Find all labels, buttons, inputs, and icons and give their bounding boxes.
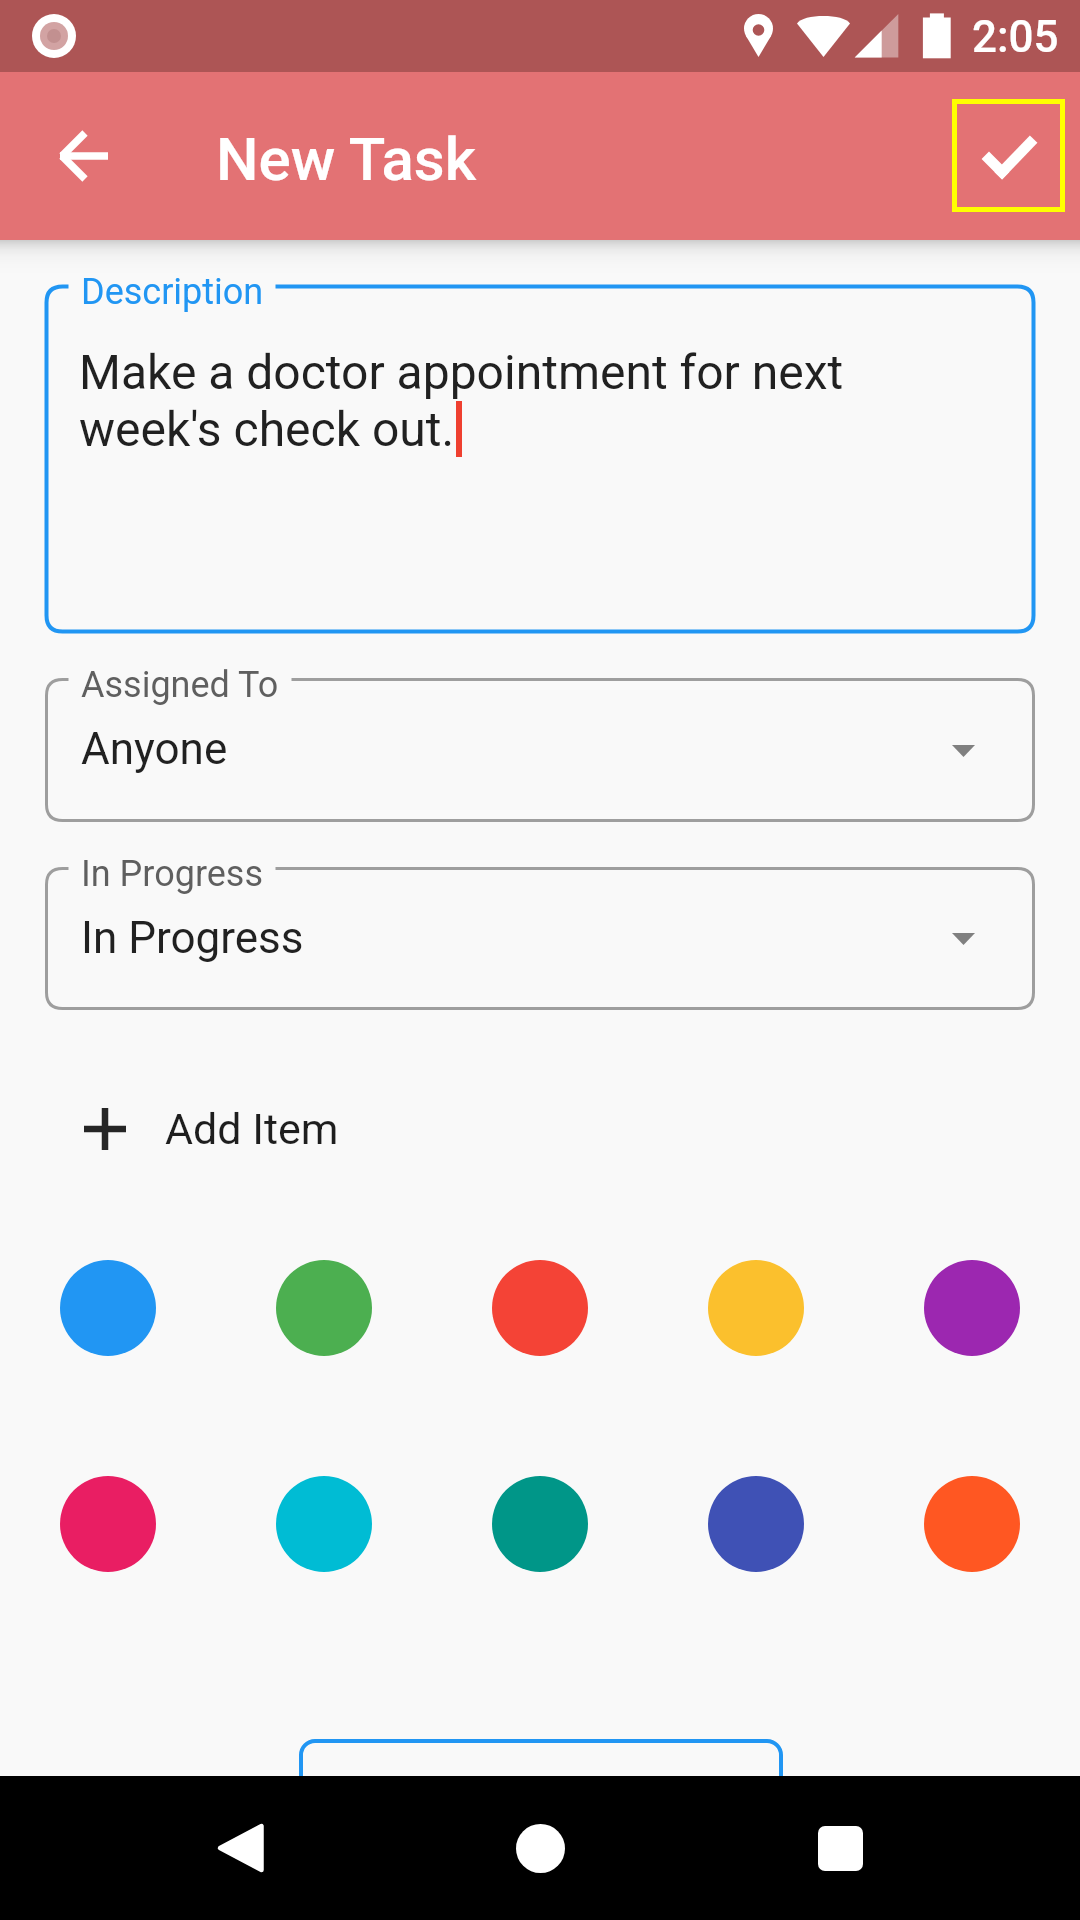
- staticText: Assigned To: [81, 664, 279, 706]
- button[interactable]: Choose colour: [276, 1260, 372, 1356]
- button[interactable]: Choose colour: [276, 1476, 372, 1572]
- button[interactable]: Choose colour: [924, 1260, 1020, 1356]
- button[interactable]: Save task: [952, 99, 1065, 212]
- staticText: week's check out.: [79, 401, 455, 457]
- staticText: Description: [81, 271, 264, 313]
- button[interactable]: Back: [190, 1798, 290, 1898]
- button[interactable]: Choose colour: [60, 1260, 156, 1356]
- button[interactable]: Choose colour: [708, 1476, 804, 1572]
- button[interactable]: Choose colour: [924, 1476, 1020, 1572]
- button[interactable]: Choose colour: [60, 1476, 156, 1572]
- button[interactable]: Navigate up: [30, 102, 138, 210]
- staticText: Make a doctor appointment for next: [79, 344, 844, 400]
- button[interactable]: Add Item: [72, 1080, 392, 1178]
- staticText: In Progress: [81, 912, 304, 964]
- button[interactable]: Choose colour: [492, 1260, 588, 1356]
- button[interactable]: Choose colour: [492, 1476, 588, 1572]
- staticText: In Progress: [81, 853, 264, 895]
- staticText: Add Item: [165, 1104, 339, 1154]
- button[interactable]: Home: [490, 1798, 590, 1898]
- staticText: Anyone: [81, 723, 228, 775]
- staticText: New Task: [216, 124, 476, 194]
- staticText: 2:05: [972, 11, 1059, 63]
- button[interactable]: Recent apps: [790, 1798, 890, 1898]
- button[interactable]: Choose colour: [708, 1260, 804, 1356]
